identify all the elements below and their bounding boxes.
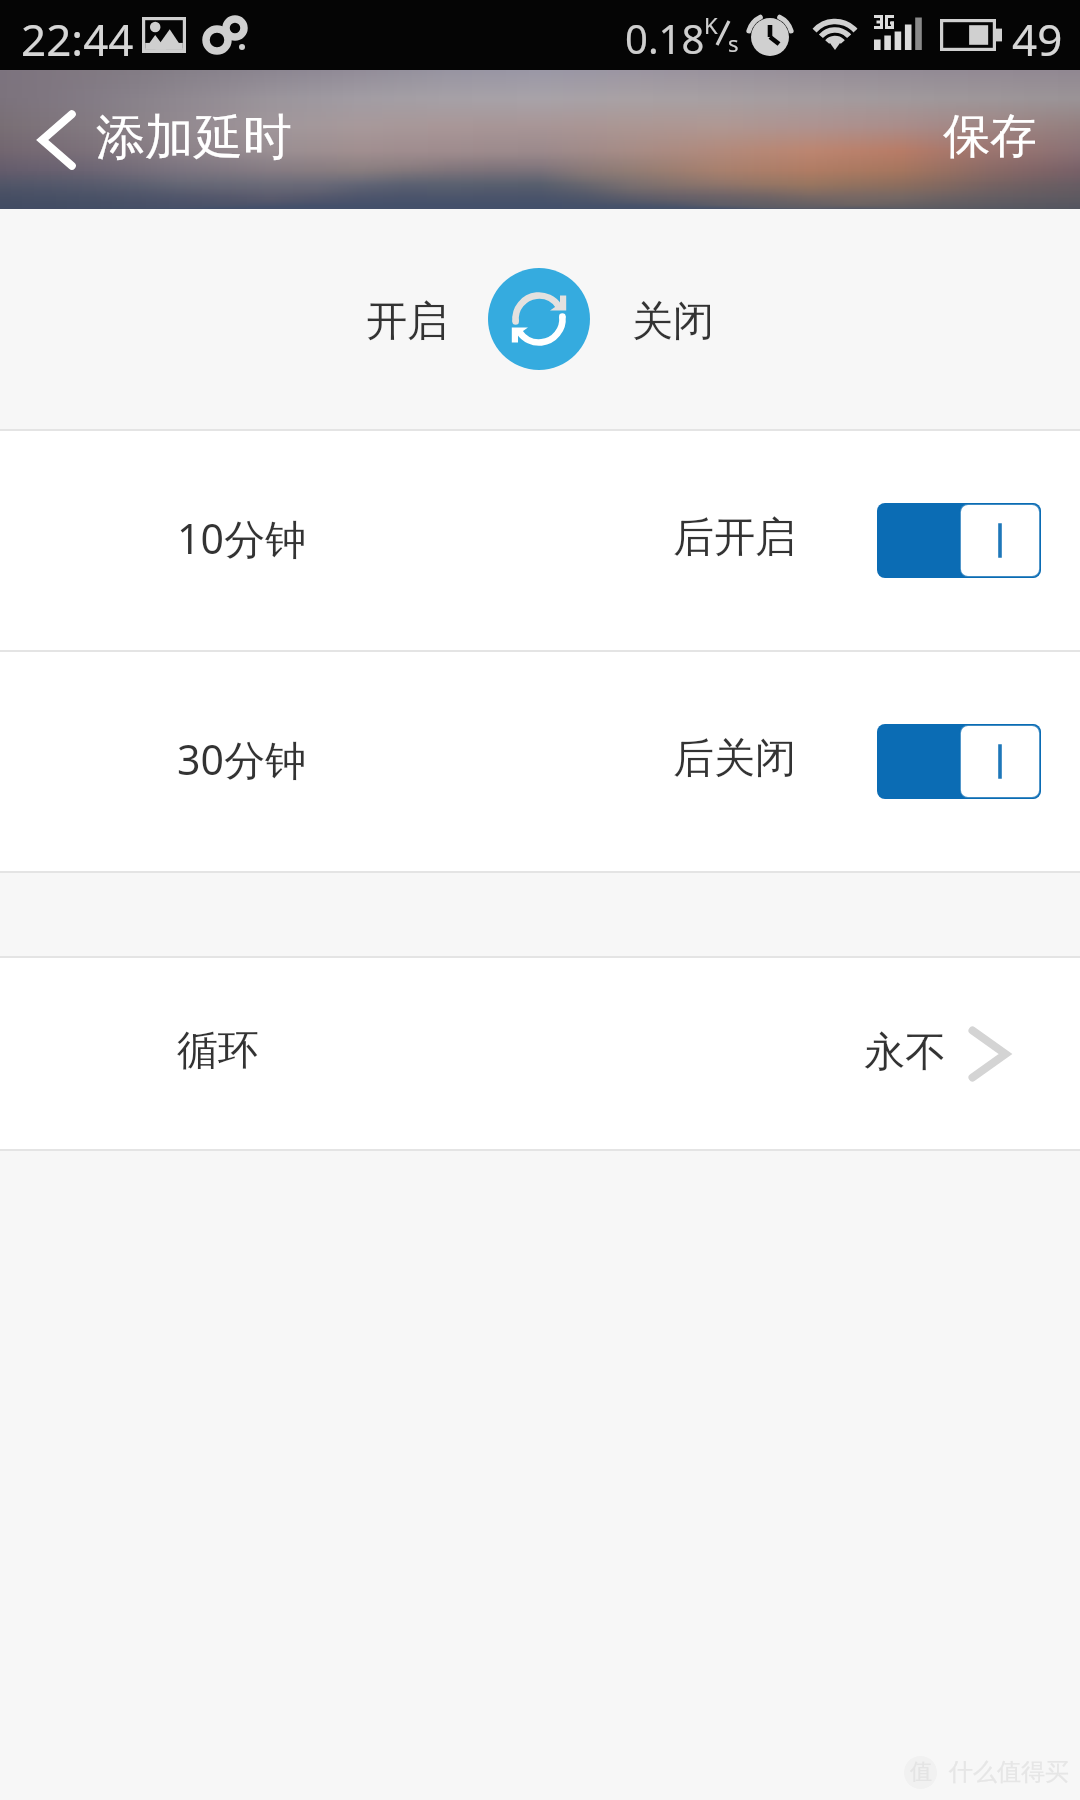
staticText: 后开启 [673, 512, 796, 564]
staticText: 后关闭 [673, 733, 796, 785]
staticText: 保存 [943, 107, 1037, 166]
button[interactable]: 30分钟 [0, 652, 1080, 871]
button[interactable]: 保存 [919, 82, 1080, 197]
staticText: 循环 [177, 1025, 259, 1077]
staticText: 30分钟 [177, 731, 306, 787]
other: Mobile signal [874, 15, 924, 51]
button[interactable]: Toggle delay mode [488, 268, 590, 370]
staticText: s [728, 28, 739, 58]
other: Screenshot [142, 17, 186, 53]
staticText: 永不 [864, 1027, 946, 1079]
other: Battery 49 percent [940, 19, 1002, 51]
button[interactable]: 循环 [0, 958, 1080, 1149]
other: Back [38, 110, 76, 170]
staticText: 添加延时 [96, 107, 292, 169]
staticText: 什么值得买 [949, 1757, 1069, 1787]
other: Wi-Fi [808, 14, 864, 56]
staticText: 0.18 [625, 11, 705, 65]
other: Notification [203, 16, 251, 54]
button[interactable]: Switch, on [877, 503, 1041, 578]
staticText: K [704, 10, 718, 40]
button[interactable]: 开启 [344, 271, 470, 367]
button[interactable]: 关闭 [610, 271, 736, 367]
button[interactable]: Switch, on [877, 724, 1041, 799]
button[interactable]: 10分钟 [0, 431, 1080, 650]
staticText: 开启 [366, 296, 448, 348]
button[interactable]: Back [0, 83, 312, 197]
other: Alarm set [746, 11, 794, 59]
staticText: 值 [910, 1758, 932, 1786]
staticText: 关闭 [632, 296, 714, 348]
staticText: 22:44 [21, 9, 134, 69]
staticText: 10分钟 [177, 510, 306, 566]
staticText: 49 [1012, 9, 1063, 69]
